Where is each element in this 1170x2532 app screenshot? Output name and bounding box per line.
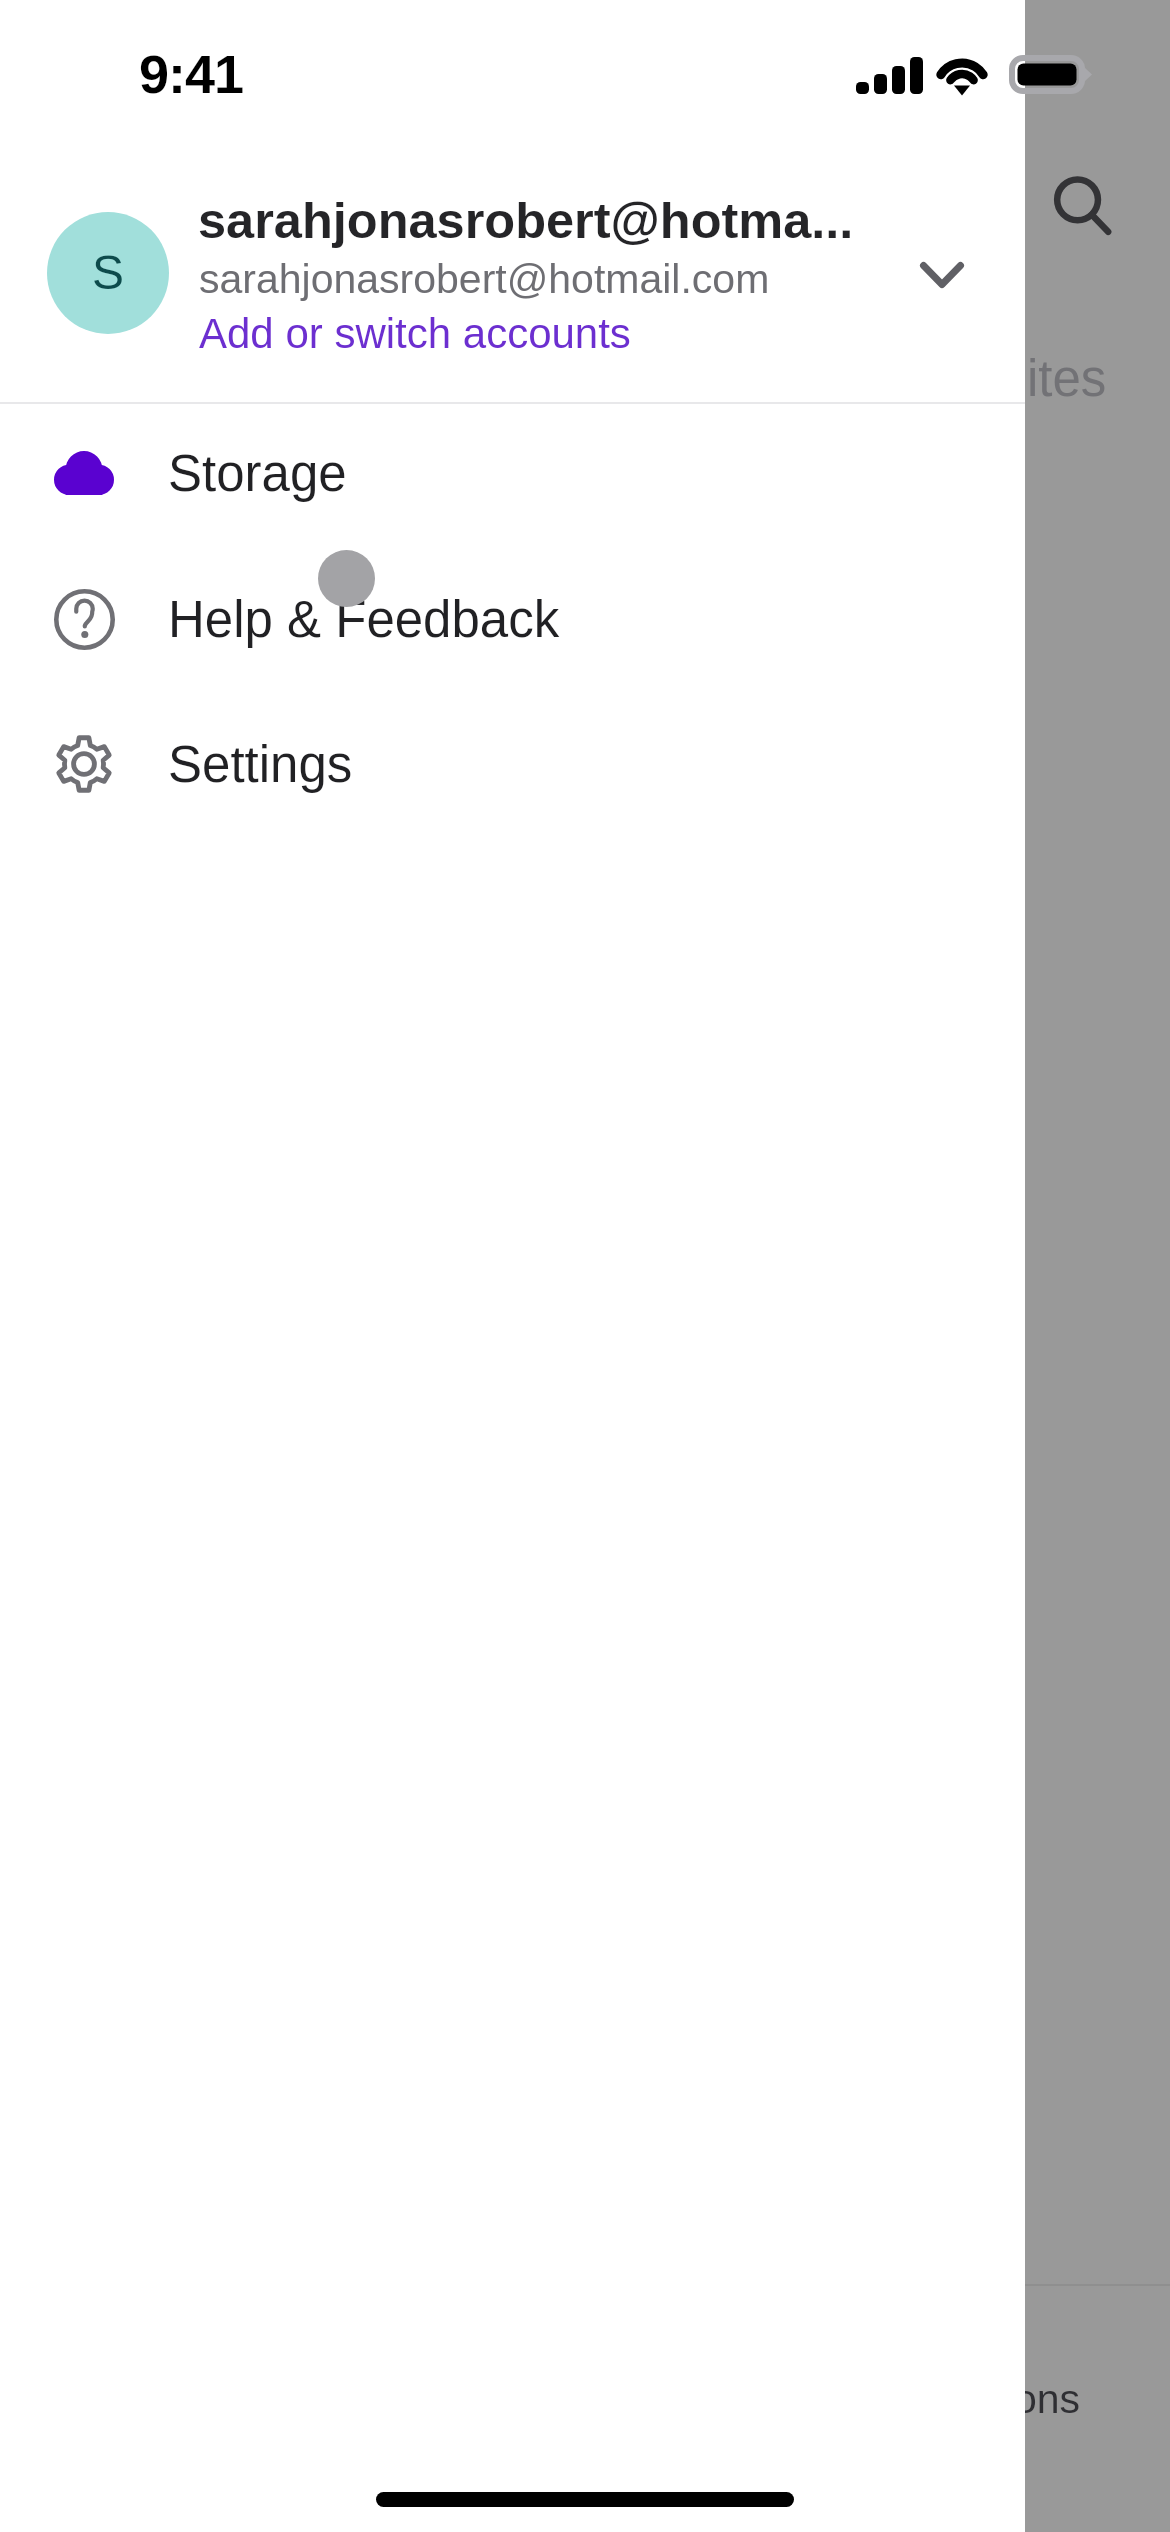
staticText: ons [1014, 2376, 1081, 2422]
button[interactable]: Storage [0, 401, 1025, 545]
button[interactable]: S [0, 168, 1025, 383]
staticText: Settings [168, 736, 353, 793]
staticText: sarahjonasrobert@hotma... [198, 192, 854, 248]
staticText: Help & Feedback [168, 591, 560, 648]
button[interactable]: Settings [0, 692, 1025, 836]
button[interactable]: Switch account [902, 236, 982, 316]
staticText: Add or switch accounts [199, 310, 631, 357]
button[interactable]: Help & Feedback [0, 547, 1025, 691]
staticText: sarahjonasrobert@hotmail.com [199, 256, 770, 302]
staticText: ites [1027, 350, 1107, 407]
staticText: 9:41 [139, 44, 244, 104]
button[interactable]: Search [1040, 165, 1126, 251]
staticText: Storage [168, 445, 347, 502]
staticText: S [92, 246, 125, 300]
